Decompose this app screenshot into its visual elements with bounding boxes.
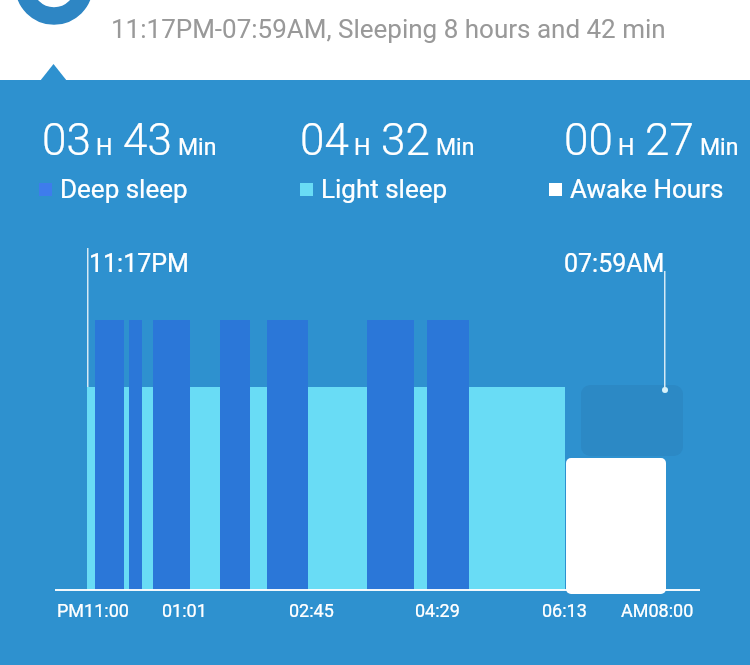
staticText: Min [178,134,217,161]
staticText: 11:17PM-07:59AM, Sleeping 8 hours and 42… [111,14,666,44]
staticText: Awake Hours [570,174,724,204]
button[interactable]: 03 [42,114,217,166]
staticText: 43 [123,114,172,166]
staticText: 27 [645,114,694,166]
staticText: 01:01 [162,600,207,621]
staticText: 07:59AM [564,249,665,278]
staticText: H [96,134,113,161]
staticText: Min [700,134,739,161]
staticText: H [354,134,371,161]
staticText: Min [436,134,475,161]
staticText: PM11:00 [57,600,129,621]
staticText: 11:17PM [89,249,189,278]
staticText: 04 [300,114,349,166]
staticText: H [618,134,635,161]
staticText: 32 [381,114,430,166]
staticText: 00 [564,114,613,166]
button[interactable]: 00 [564,114,739,166]
staticText: AM08:00 [621,600,694,621]
staticText: 06:13 [542,600,587,621]
button[interactable]: Light sleep [300,174,448,204]
staticText: 03 [42,114,91,166]
staticText: 02:45 [289,600,334,621]
button[interactable]: Awake Hours [549,174,724,204]
staticText: Deep sleep [60,174,188,204]
staticText: 04:29 [415,600,460,621]
button[interactable]: Deep sleep [39,174,188,204]
staticText: Light sleep [321,174,448,204]
button[interactable]: 04 [300,114,475,166]
